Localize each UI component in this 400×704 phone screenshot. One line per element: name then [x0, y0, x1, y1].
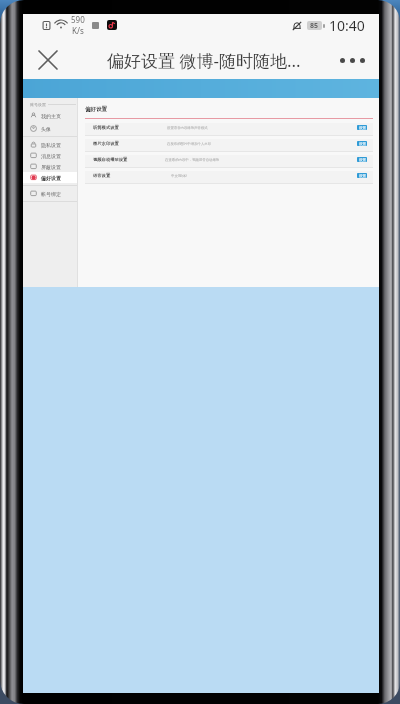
staticText: 设置	[359, 174, 366, 178]
staticText: 听筒模式设置	[93, 125, 119, 130]
staticText: 屏蔽设置	[41, 164, 61, 170]
button[interactable]: 头像	[23, 123, 78, 134]
staticText: 隐私设置	[41, 142, 61, 148]
staticText: 中文(简体)	[171, 173, 187, 178]
staticText: 视频自动播放设置	[93, 157, 128, 162]
button[interactable]: 我的主页	[23, 110, 78, 121]
button[interactable]: More options	[341, 43, 371, 73]
staticText: 590	[71, 14, 85, 25]
staticText: 设置	[359, 158, 366, 162]
button[interactable]: Close	[31, 41, 65, 75]
button[interactable]: 消息设置	[23, 150, 78, 161]
staticText: 图片水印设置	[93, 141, 119, 146]
staticText: 设置	[359, 142, 366, 146]
staticText: 账号设置	[30, 102, 46, 107]
button[interactable]: 帐号绑定	[23, 188, 78, 199]
staticText: 在发布的图片中增加个人水印	[167, 142, 212, 146]
staticText: K/s	[72, 25, 84, 36]
staticText: 偏好设置	[41, 175, 61, 181]
staticText: 我的主页	[41, 113, 61, 119]
button[interactable]: 语言设置	[85, 171, 373, 184]
staticText: 帐号绑定	[41, 191, 61, 197]
staticText: 头像	[41, 126, 51, 132]
staticText: 85	[310, 21, 319, 30]
button[interactable]: 听筒模式设置	[85, 123, 373, 136]
button[interactable]: 隐私设置	[23, 139, 78, 150]
staticText: 在查看的内容中，视频是否自动播放	[165, 158, 220, 162]
staticText: 消息设置	[41, 153, 61, 159]
button[interactable]: 视频自动播放设置	[85, 155, 373, 168]
staticText: 10:40	[329, 16, 365, 35]
button[interactable]: 屏蔽设置	[23, 161, 78, 172]
button[interactable]: 图片水印设置	[85, 139, 373, 152]
staticText: 语言设置	[93, 173, 111, 178]
staticText: 偏好设置 微博-随时随地...	[107, 49, 301, 72]
staticText: 偏好设置	[85, 106, 107, 113]
staticText: 设置	[359, 126, 366, 130]
button[interactable]: 偏好设置	[23, 172, 78, 183]
staticText: 设置语音内容播放声音模式	[167, 126, 208, 130]
